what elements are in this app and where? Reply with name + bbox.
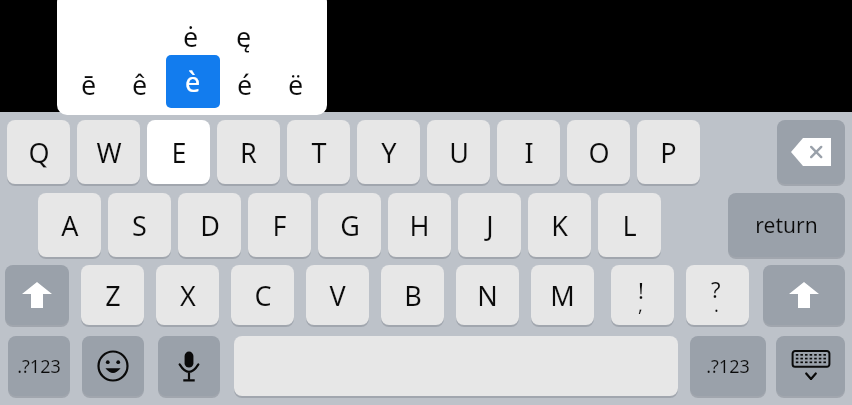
staticText: è: [185, 63, 201, 100]
button[interactable]: V: [306, 265, 369, 325]
button[interactable]: Y: [357, 120, 420, 184]
staticText: .?123: [17, 354, 61, 379]
button[interactable]: é: [237, 66, 253, 103]
staticText: K: [551, 207, 568, 244]
button[interactable]: è: [166, 55, 220, 108]
button[interactable]: X: [156, 265, 219, 325]
button[interactable]: P: [637, 120, 700, 184]
button[interactable]: Delete: [777, 120, 845, 184]
staticText: ,: [638, 293, 643, 318]
button[interactable]: L: [598, 193, 661, 257]
button[interactable]: ę: [236, 18, 252, 55]
button[interactable]: Q: [7, 120, 70, 184]
button[interactable]: K: [528, 193, 591, 257]
staticText: S: [132, 207, 147, 244]
button[interactable]: Question period: [686, 265, 749, 325]
button[interactable]: Z: [81, 265, 144, 325]
staticText: .: [714, 293, 719, 318]
staticText: .?123: [706, 354, 750, 379]
staticText: C: [254, 277, 272, 314]
staticText: !: [638, 275, 644, 305]
button[interactable]: B: [381, 265, 444, 325]
button[interactable]: ë: [288, 66, 304, 103]
button[interactable]: N: [456, 265, 519, 325]
staticText: Y: [381, 134, 397, 171]
button[interactable]: Shift: [763, 265, 845, 325]
staticText: G: [340, 207, 360, 244]
button[interactable]: .?123: [690, 336, 766, 396]
button[interactable]: D: [178, 193, 241, 257]
staticText: O: [588, 134, 610, 171]
button[interactable]: O: [567, 120, 630, 184]
staticText: M: [550, 277, 575, 314]
staticText: W: [96, 134, 122, 171]
button[interactable]: I: [497, 120, 560, 184]
button[interactable]: ê: [132, 66, 148, 103]
staticText: J: [486, 207, 494, 244]
staticText: R: [240, 134, 257, 171]
staticText: L: [622, 207, 637, 244]
button[interactable]: Shift: [5, 265, 69, 325]
button[interactable]: ė: [183, 18, 199, 55]
staticText: ?: [711, 274, 721, 304]
button[interactable]: C: [231, 265, 294, 325]
staticText: Z: [105, 277, 121, 314]
staticText: I: [524, 134, 534, 171]
staticText: U: [449, 134, 469, 171]
button[interactable]: .?123: [8, 336, 70, 396]
button[interactable]: J: [458, 193, 521, 257]
staticText: D: [200, 207, 220, 244]
button[interactable]: Exclamation comma: [611, 265, 674, 325]
button[interactable]: S: [108, 193, 171, 257]
button[interactable]: A: [38, 193, 101, 257]
button[interactable]: F: [248, 193, 311, 257]
button[interactable]: T: [287, 120, 350, 184]
staticText: X: [180, 277, 196, 314]
button[interactable]: G: [318, 193, 381, 257]
button[interactable]: ē: [81, 66, 97, 103]
staticText: V: [329, 277, 346, 314]
button[interactable]: Hide keyboard: [776, 336, 845, 396]
button[interactable]: Emoji: [82, 336, 144, 396]
staticText: Q: [28, 134, 50, 171]
button[interactable]: U: [427, 120, 490, 184]
button[interactable]: M: [531, 265, 594, 325]
staticText: A: [61, 207, 79, 244]
staticText: P: [660, 134, 677, 171]
staticText: T: [311, 134, 327, 171]
button[interactable]: H: [388, 193, 451, 257]
staticText: H: [409, 207, 430, 244]
staticText: B: [404, 277, 422, 314]
button[interactable]: E: [147, 120, 210, 184]
button[interactable]: Dictation: [158, 336, 220, 396]
button[interactable]: return: [728, 193, 845, 257]
staticText: E: [171, 134, 187, 171]
button[interactable]: W: [77, 120, 140, 184]
staticText: F: [272, 207, 287, 244]
button[interactable]: R: [217, 120, 280, 184]
staticText: return: [755, 211, 818, 240]
staticText: N: [477, 277, 498, 314]
